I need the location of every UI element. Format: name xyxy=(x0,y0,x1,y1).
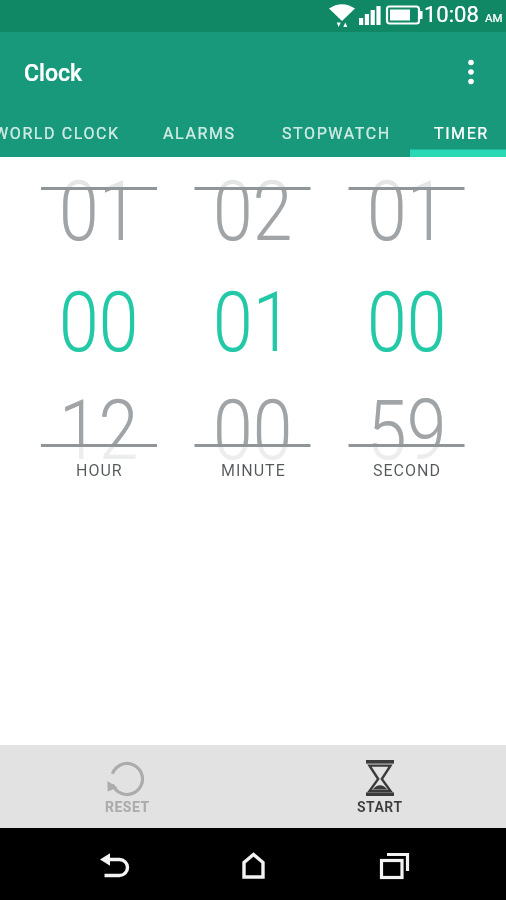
button[interactable] xyxy=(223,828,283,900)
button[interactable] xyxy=(362,828,422,900)
staticText: 01 xyxy=(367,162,447,260)
staticText: 59 xyxy=(367,381,447,479)
button[interactable] xyxy=(83,828,143,900)
staticText: 02 xyxy=(213,162,293,260)
staticText: ALARMS xyxy=(163,124,236,143)
staticText: 12 xyxy=(59,381,139,479)
staticText: SECOND xyxy=(373,461,441,480)
staticText: 01 xyxy=(59,162,139,260)
staticText: 01 xyxy=(213,273,293,371)
staticText: HOUR xyxy=(76,461,123,480)
button[interactable] xyxy=(320,745,440,828)
staticText: TIMER xyxy=(434,124,489,143)
staticText: AM xyxy=(485,11,503,24)
staticText: RESET xyxy=(105,799,150,815)
staticText: 00 xyxy=(367,273,447,371)
button[interactable]: STOPWATCH xyxy=(266,111,406,156)
button[interactable]: ALARMS xyxy=(139,111,259,156)
staticText: 00 xyxy=(213,381,293,479)
staticText: Clock xyxy=(24,60,83,87)
button[interactable]: TIMER xyxy=(414,111,506,156)
staticText: WORLD CLOCK xyxy=(0,124,120,143)
button[interactable]: WORLD CLOCK xyxy=(0,111,147,156)
staticText: START xyxy=(357,799,403,815)
button[interactable] xyxy=(67,745,187,828)
staticText: 00 xyxy=(59,273,139,371)
button[interactable] xyxy=(452,44,492,100)
staticText: STOPWATCH xyxy=(282,124,391,143)
staticText: MINUTE xyxy=(221,461,286,480)
staticText: 10:08 xyxy=(424,2,479,28)
